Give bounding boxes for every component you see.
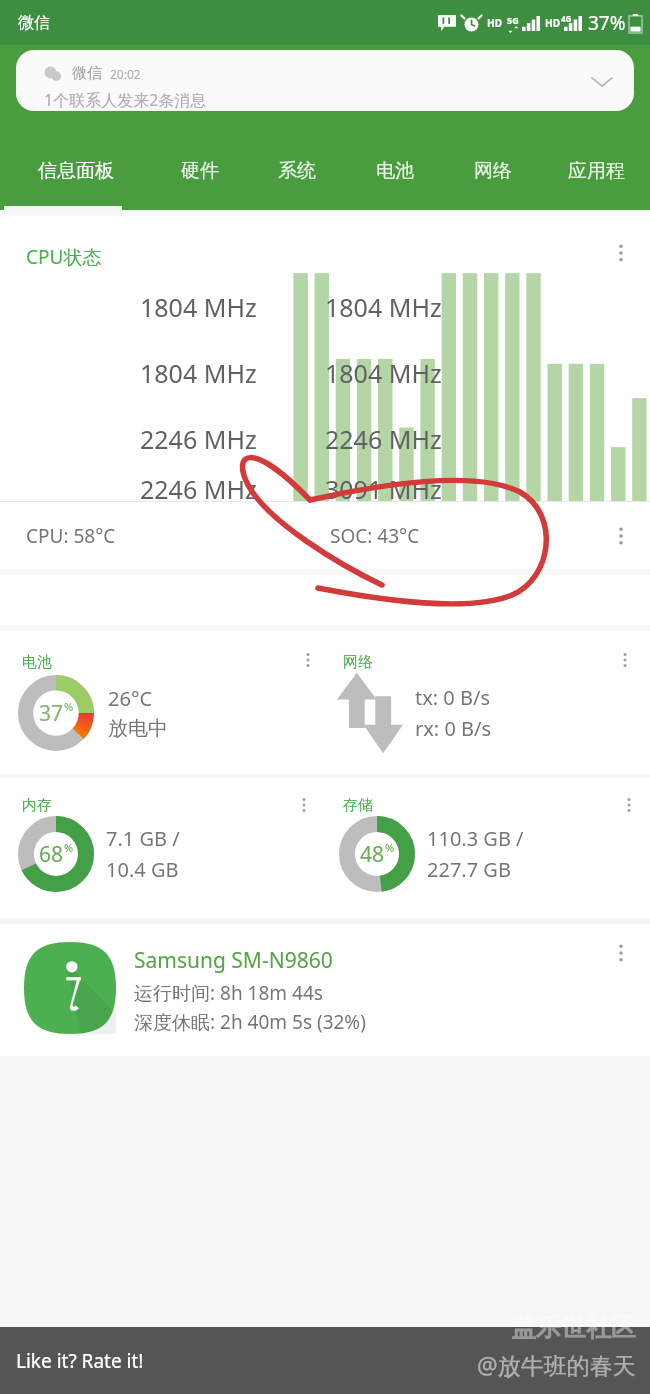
staticText: 运行时间: 8h 18m 44s <box>134 980 323 1006</box>
button[interactable]: Memory options <box>291 792 317 818</box>
staticText: 10.4 GB <box>106 856 179 883</box>
button[interactable]: 微信 <box>16 50 634 111</box>
staticText: 4G <box>561 13 572 24</box>
staticText: HD <box>545 16 560 30</box>
button[interactable]: Storage options <box>616 792 642 818</box>
staticText: 2246 MHz <box>325 422 442 456</box>
staticText: 227.7 GB <box>427 856 511 883</box>
staticText: 放电中 <box>108 716 168 741</box>
staticText: 2246 MHz <box>140 472 257 501</box>
staticText: 硬件 <box>181 159 219 183</box>
staticText: 5G <box>507 14 519 26</box>
staticText: 1804 MHz <box>140 290 257 324</box>
button[interactable]: 网络 <box>325 631 650 774</box>
button[interactable]: Like it? Rate it! <box>0 1327 650 1394</box>
staticText: 1804 MHz <box>140 356 257 390</box>
staticText: 7.1 GB / <box>106 825 180 852</box>
button[interactable]: Temperature options <box>606 521 636 551</box>
staticText: 内存 <box>22 796 52 815</box>
staticText: CPU: 58°C <box>26 523 116 549</box>
staticText: 20:02 <box>110 66 141 82</box>
staticText: 微信 <box>18 13 50 33</box>
staticText: 网络 <box>343 653 373 672</box>
staticText: 1个联系人发来2条消息 <box>44 89 207 111</box>
staticText: 电池 <box>376 159 414 183</box>
staticText: 37 <box>39 699 64 728</box>
staticText: 电池 <box>22 653 52 672</box>
staticText: rx: 0 B/s <box>415 715 492 742</box>
other: Expand notification <box>592 72 612 92</box>
staticText: 68 <box>39 840 64 869</box>
staticText: tx: 0 B/s <box>415 684 491 711</box>
button[interactable]: 电池 <box>0 631 325 774</box>
staticText: 26°C <box>108 685 153 712</box>
staticText: 1804 MHz <box>325 290 442 324</box>
button[interactable]: 信息面板 <box>0 145 151 210</box>
staticText: HD <box>487 16 502 30</box>
staticText: 110.3 GB / <box>427 825 524 852</box>
button[interactable]: 系统 <box>248 145 346 210</box>
button[interactable]: 应用程 <box>542 145 650 210</box>
button[interactable]: Battery options <box>295 647 321 673</box>
staticText: 网络 <box>474 159 512 183</box>
button[interactable]: CPU status options <box>606 238 636 268</box>
staticText: Samsung SM-N9860 <box>134 946 333 975</box>
staticText: 48 <box>360 840 385 869</box>
staticText: 微信 <box>72 64 102 83</box>
staticText: SOC: 43°C <box>330 523 420 549</box>
staticText: 2246 MHz <box>140 422 257 456</box>
button[interactable]: 网络 <box>444 145 542 210</box>
button[interactable]: Samsung SM-N9860 <box>0 924 650 1056</box>
staticText: 存储 <box>343 796 373 815</box>
button[interactable]: Network options <box>612 647 638 673</box>
staticText: Like it? Rate it! <box>16 1348 144 1374</box>
staticText: % <box>385 840 395 855</box>
staticText: 信息面板 <box>38 159 114 183</box>
staticText: 1804 MHz <box>325 356 442 390</box>
button[interactable]: 硬件 <box>151 145 248 210</box>
staticText: 盖乐世社区 <box>511 1312 636 1343</box>
staticText: % <box>64 699 74 714</box>
staticText: % <box>64 840 74 855</box>
button[interactable]: 内存 <box>0 778 325 918</box>
staticText: 37% <box>588 10 626 36</box>
staticText: @放牛班的春天 <box>477 1349 636 1380</box>
staticText: 3091 MHz <box>325 472 442 501</box>
button[interactable]: 电池 <box>346 145 444 210</box>
staticText: 应用程 <box>568 159 625 183</box>
button[interactable]: 存储 <box>325 778 650 918</box>
button[interactable]: Device options <box>606 938 636 968</box>
staticText: 系统 <box>278 159 316 183</box>
staticText: CPU状态 <box>26 244 102 270</box>
staticText: 深度休眠: 2h 40m 5s (32%) <box>134 1009 366 1035</box>
